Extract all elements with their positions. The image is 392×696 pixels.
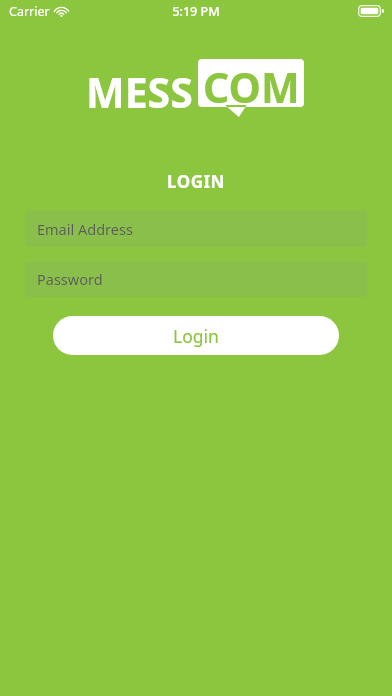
staticText: Login [173, 324, 219, 348]
button[interactable]: Login [53, 316, 339, 355]
button[interactable]: Password [25, 261, 367, 297]
staticText: 5:19 PM [172, 3, 220, 20]
staticText: Password [37, 269, 103, 289]
button[interactable]: Email Address [25, 211, 367, 247]
staticText: LOGIN [167, 170, 225, 193]
staticText: Email Address [37, 219, 133, 239]
staticText: COM [203, 59, 300, 107]
staticText: MESS [86, 64, 193, 120]
staticText: Carrier [9, 3, 50, 20]
